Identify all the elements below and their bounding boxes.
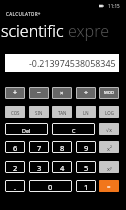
staticText: -0.213974538058345 <box>29 57 116 69</box>
button[interactable]: 9 <box>76 141 96 153</box>
button[interactable]: x² <box>99 141 119 153</box>
button[interactable]: xʸ <box>99 161 119 173</box>
button[interactable]: LOG <box>99 106 119 118</box>
staticText: 2 <box>13 163 18 173</box>
button[interactable]: 8 <box>52 141 72 153</box>
staticText: 7 <box>37 143 42 153</box>
button[interactable]: 7 <box>29 141 49 153</box>
staticText: 5 <box>84 163 89 173</box>
staticText: LOG <box>105 110 114 116</box>
button[interactable]: 6 <box>5 141 25 153</box>
button[interactable]: Add <box>5 87 25 99</box>
staticText: = <box>107 183 111 191</box>
staticText: CALCULATOR+ <box>6 11 41 17</box>
staticText: 0 <box>48 182 53 192</box>
button[interactable]: √x <box>99 123 119 135</box>
staticText: scientific <box>1 20 68 42</box>
button[interactable]: C <box>52 123 95 135</box>
button[interactable]: 5 <box>76 161 96 173</box>
button[interactable]: MOD <box>99 87 119 99</box>
button[interactable]: 1 <box>76 180 96 192</box>
button[interactable]: Subtract <box>29 87 49 99</box>
button[interactable]: 3 <box>29 161 49 173</box>
button[interactable]: 2 <box>5 161 25 173</box>
button[interactable]: 4 <box>52 161 72 173</box>
button[interactable]: 0 <box>29 180 72 192</box>
staticText: 3 <box>37 163 42 173</box>
button[interactable]: Divide <box>76 87 96 99</box>
staticText: 4 <box>60 163 65 173</box>
staticText: − <box>37 88 42 98</box>
button[interactable]: LN <box>76 106 96 118</box>
button[interactable]: TAN <box>52 106 72 118</box>
button[interactable]: COS <box>5 106 25 118</box>
staticText: 11:15 <box>108 3 120 9</box>
staticText: COS <box>11 110 20 116</box>
staticText: Del <box>22 127 31 134</box>
staticText: x² <box>107 145 112 152</box>
staticText: 8 <box>60 143 65 153</box>
staticText: expre <box>68 20 109 42</box>
staticText: . <box>14 182 17 192</box>
button[interactable]: Equals <box>99 180 119 192</box>
staticText: xʸ <box>107 165 112 172</box>
staticText: SIN <box>35 110 43 116</box>
button[interactable]: SIN <box>29 106 49 118</box>
button[interactable]: Multiply <box>52 87 72 99</box>
staticText: 1 <box>84 182 89 192</box>
button[interactable]: . <box>5 180 25 192</box>
staticText: √x <box>106 127 112 134</box>
staticText: 9 <box>84 143 89 153</box>
staticText: × <box>60 89 64 97</box>
button[interactable]: Del <box>5 123 48 135</box>
other: Status bar <box>99 3 120 9</box>
staticText: LN <box>83 110 89 116</box>
staticText: 6 <box>13 143 18 153</box>
staticText: + <box>13 88 18 98</box>
staticText: ÷ <box>84 88 89 98</box>
staticText: MOD <box>104 90 114 96</box>
staticText: TAN <box>58 110 67 116</box>
staticText: C <box>72 127 76 134</box>
